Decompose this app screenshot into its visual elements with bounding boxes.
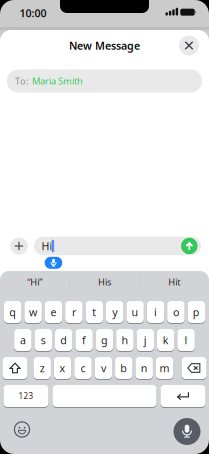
staticText: v — [101, 361, 106, 375]
button[interactable]: m — [156, 356, 173, 380]
staticText: f — [82, 333, 86, 347]
button[interactable]: a — [14, 328, 32, 352]
button[interactable] — [45, 257, 62, 269]
staticText: n — [141, 361, 148, 375]
staticText: k — [163, 333, 169, 347]
staticText: Hi — [41, 239, 52, 253]
button[interactable]: d — [55, 328, 72, 352]
button[interactable] — [10, 237, 28, 255]
staticText: To: — [15, 75, 29, 87]
staticText: u — [132, 305, 139, 319]
button[interactable] — [179, 35, 199, 55]
staticText: y — [112, 305, 117, 319]
staticText: p — [193, 305, 200, 319]
button[interactable]: h — [116, 328, 134, 352]
staticText: “Hi” — [27, 276, 42, 288]
button[interactable] — [52, 384, 156, 408]
staticText: t — [92, 305, 96, 319]
staticText: h — [121, 333, 128, 347]
button[interactable]: Hit — [141, 272, 207, 292]
staticText: w — [29, 305, 37, 319]
button[interactable]: To: — [7, 69, 202, 92]
button[interactable]: j — [137, 328, 154, 352]
staticText: His — [98, 276, 111, 288]
staticText: j — [144, 333, 147, 347]
button[interactable]: e — [45, 300, 62, 324]
button[interactable]: c — [74, 356, 92, 380]
button[interactable]: v — [95, 356, 112, 380]
button[interactable]: s — [35, 328, 52, 352]
button[interactable]: y — [106, 300, 123, 324]
button[interactable] — [14, 421, 30, 437]
button[interactable]: 123 — [3, 384, 48, 408]
staticText: 123 — [18, 391, 33, 401]
staticText: r — [72, 305, 76, 319]
button[interactable]: r — [65, 300, 83, 324]
button[interactable] — [160, 384, 205, 408]
staticText: x — [60, 361, 66, 375]
button[interactable]: z — [33, 356, 51, 380]
button[interactable] — [181, 238, 198, 254]
button[interactable]: u — [126, 300, 144, 324]
button[interactable]: n — [135, 356, 153, 380]
button[interactable]: His — [71, 272, 137, 292]
button[interactable]: q — [4, 300, 21, 324]
button[interactable]: “Hi” — [2, 272, 68, 292]
button[interactable] — [173, 418, 200, 445]
staticText: i — [154, 305, 157, 319]
staticText: d — [60, 333, 67, 347]
button[interactable]: x — [54, 356, 71, 380]
button[interactable]: f — [75, 328, 93, 352]
button[interactable]: o — [167, 300, 185, 324]
staticText: New Message — [69, 38, 140, 53]
staticText: l — [185, 333, 188, 347]
button[interactable]: t — [86, 300, 103, 324]
staticText: e — [50, 305, 56, 319]
button[interactable]: b — [115, 356, 132, 380]
button[interactable]: l — [177, 328, 195, 352]
staticText: b — [120, 361, 127, 375]
staticText: Hit — [168, 276, 180, 288]
staticText: z — [40, 361, 45, 375]
button[interactable] — [181, 356, 206, 380]
staticText: m — [160, 361, 170, 375]
staticText: o — [173, 305, 179, 319]
staticText: g — [101, 333, 108, 347]
staticText: a — [20, 333, 26, 347]
staticText: c — [80, 361, 85, 375]
button[interactable] — [2, 356, 27, 380]
staticText: s — [41, 333, 46, 347]
staticText: Maria Smith — [32, 75, 83, 87]
button[interactable]: k — [157, 328, 174, 352]
button[interactable]: i — [147, 300, 164, 324]
staticText: 10:00 — [19, 6, 46, 20]
button[interactable]: g — [96, 328, 113, 352]
button[interactable]: p — [188, 300, 205, 324]
staticText: q — [9, 305, 16, 319]
button[interactable]: w — [24, 300, 42, 324]
